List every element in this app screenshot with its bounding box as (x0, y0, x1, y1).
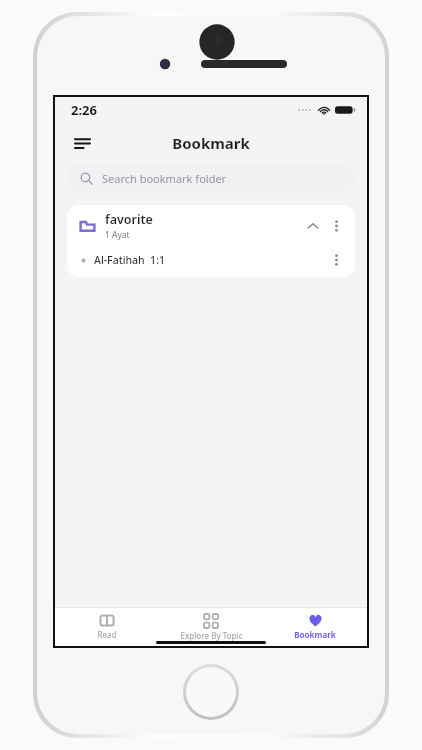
staticText: Bookmark (172, 133, 250, 153)
button[interactable]: Bookmark (263, 608, 367, 646)
staticText: 1 Ayat (105, 229, 130, 241)
button[interactable]: Ayat options (325, 249, 347, 271)
staticText: Bookmark (294, 629, 336, 640)
staticText: Read (97, 629, 117, 640)
button[interactable]: Al-Fatihah 1:1 (67, 247, 355, 273)
staticText: Al-Fatihah 1:1 (94, 253, 325, 267)
button[interactable]: Folder options (325, 215, 347, 237)
staticText: Search bookmark folder (102, 171, 227, 186)
button[interactable]: favorite (67, 205, 355, 247)
staticText: Explore By Topic (180, 630, 243, 641)
button[interactable]: Explore By Topic (159, 608, 263, 646)
button[interactable]: Read (55, 608, 159, 646)
staticText: 2:26 (71, 101, 97, 119)
button[interactable]: Search bookmark folder (67, 163, 355, 193)
button[interactable]: Menu (65, 126, 99, 160)
button[interactable]: Collapse folder (301, 214, 325, 238)
staticText: favorite (105, 211, 153, 228)
